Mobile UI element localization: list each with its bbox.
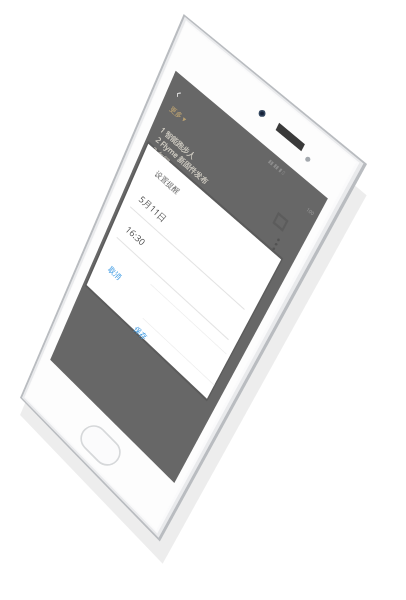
button[interactable]: More options	[295, 180, 317, 202]
button[interactable]: 保存 Save	[145, 330, 183, 352]
button[interactable]: Back	[178, 70, 204, 92]
button[interactable]: 取消 Cancel	[100, 290, 138, 312]
